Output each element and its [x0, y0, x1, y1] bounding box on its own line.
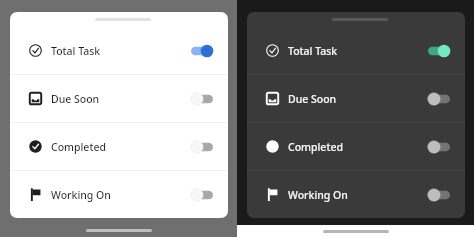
staticText: Total Task: [288, 44, 338, 58]
button[interactable]: Toggle off: [191, 188, 213, 202]
button[interactable]: Due Soon: [247, 75, 465, 122]
staticText: Due Soon: [288, 92, 337, 106]
button[interactable]: Working On: [247, 171, 465, 218]
staticText: Working On: [51, 188, 111, 202]
staticText: Completed: [288, 140, 343, 154]
staticText: Total Task: [51, 44, 101, 58]
button[interactable]: Toggle off: [191, 92, 213, 106]
button[interactable]: Total Task: [247, 27, 465, 74]
button[interactable]: Toggle off: [428, 92, 450, 106]
button[interactable]: Toggle off: [428, 140, 450, 154]
staticText: Working On: [288, 188, 348, 202]
button[interactable]: Working On: [10, 171, 228, 218]
staticText: Completed: [51, 140, 106, 154]
staticText: Due Soon: [51, 92, 100, 106]
button[interactable]: Toggle on: [428, 44, 450, 58]
button[interactable]: Due Soon: [10, 75, 228, 122]
button[interactable]: Toggle off: [428, 188, 450, 202]
button[interactable]: Toggle on: [191, 44, 213, 58]
button[interactable]: Toggle off: [191, 140, 213, 154]
button[interactable]: Completed: [247, 123, 465, 170]
button[interactable]: Completed: [10, 123, 228, 170]
button[interactable]: Total Task: [10, 27, 228, 74]
